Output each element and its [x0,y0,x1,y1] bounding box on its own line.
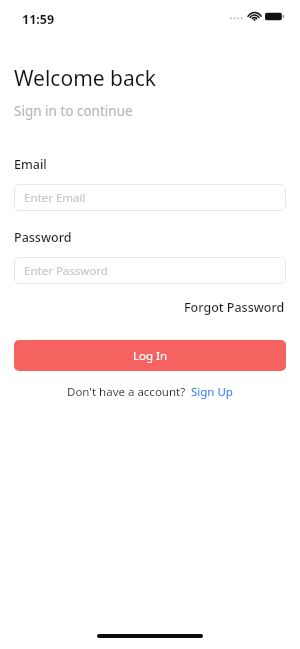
staticText: Enter Password [24,263,108,279]
staticText: Forgot Password [184,299,285,316]
button[interactable]: Forgot Password [183,297,286,318]
staticText: Sign Up [191,384,233,400]
staticText: Welcome back [14,64,157,93]
staticText: Email [14,156,47,173]
staticText: Enter Email [24,190,86,206]
button[interactable]: Enter Email [14,184,286,211]
staticText: Password [14,229,72,246]
button[interactable]: Enter Password [14,257,286,284]
staticText: Sign in to continue [14,102,133,120]
staticText: 11:59 [22,11,55,28]
button[interactable]: Sign Up [191,384,233,400]
staticText: Don't have a account? [67,384,186,400]
button[interactable]: Log In [14,340,286,371]
staticText: Log In [133,348,168,364]
